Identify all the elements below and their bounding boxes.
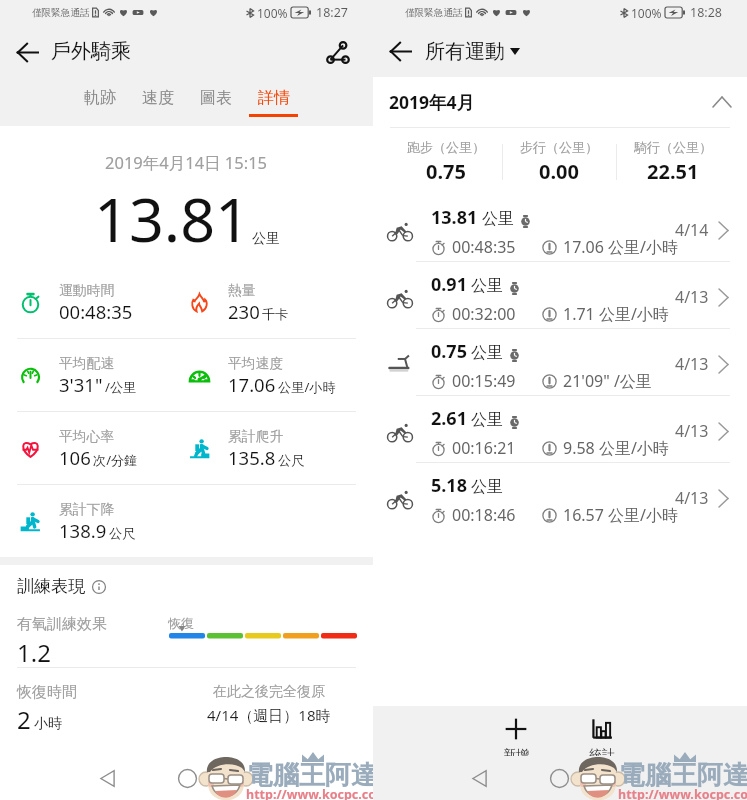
staticText: 1.71 公里/小時 — [563, 303, 669, 325]
staticText: 16.57 公里/小時 — [563, 504, 679, 526]
staticText: 2 — [17, 703, 31, 736]
staticText: 0.00 — [539, 158, 579, 185]
staticText: 公里 — [471, 343, 503, 363]
staticText: 軌跡 — [84, 88, 116, 108]
staticText: 1.2 — [17, 636, 51, 669]
staticText: 速度 — [142, 88, 174, 108]
button[interactable]: Back — [89, 760, 125, 796]
staticText: 230 — [228, 299, 260, 324]
button[interactable]: Back — [378, 29, 422, 73]
staticText: http://www.kocpc.com.tw — [246, 786, 373, 800]
staticText: 13.81 — [431, 205, 478, 230]
staticText: 在此之後完全復原 — [213, 683, 325, 701]
staticText: 22.51 — [647, 158, 699, 185]
staticText: 公里 — [471, 477, 503, 497]
staticText: 3'31" — [59, 372, 103, 397]
button[interactable]: 0.91 — [373, 262, 747, 328]
staticText: 4/14 — [675, 219, 709, 241]
button[interactable]: 統計 — [559, 712, 645, 762]
staticText: 公里 — [471, 410, 503, 430]
staticText: 恢復 — [168, 615, 194, 631]
button[interactable]: Share — [316, 30, 360, 74]
staticText: 累計爬升 — [228, 428, 284, 445]
staticText: 平均配速 — [59, 355, 115, 372]
staticText: 騎行（公里） — [634, 139, 712, 155]
staticText: 4/13 — [675, 420, 709, 442]
button[interactable]: Back — [461, 760, 497, 796]
staticText: 00:16:21 — [452, 437, 516, 459]
other: Collapse — [713, 97, 731, 107]
staticText: 小時 — [34, 715, 62, 733]
staticText: 公里/小時 — [278, 378, 336, 396]
staticText: 所有運動 — [425, 39, 505, 64]
staticText: http://www.kocpc.com.tw — [618, 786, 747, 800]
staticText: 2019年4月 — [389, 90, 475, 114]
staticText: 僅限緊急通話 — [32, 7, 90, 19]
staticText: 平均速度 — [228, 355, 284, 372]
staticText: 4/13 — [675, 286, 709, 308]
staticText: 4/13 — [675, 487, 709, 509]
staticText: 熱量 — [228, 282, 256, 299]
staticText: 戶外騎乘 — [51, 39, 131, 64]
button[interactable]: 新增 — [473, 712, 559, 762]
staticText: 5.18 — [431, 473, 467, 498]
staticText: 2019年4月14日 15:15 — [105, 151, 268, 174]
staticText: 公尺 — [278, 452, 305, 469]
staticText: 135.8 — [228, 445, 276, 470]
staticText: 公里 — [471, 276, 503, 296]
button[interactable]: Back — [5, 30, 49, 74]
staticText: 僅限緊急通話 — [405, 7, 463, 19]
staticText: 18:28 — [690, 4, 722, 21]
staticText: 跑步（公里） — [407, 139, 485, 155]
button[interactable]: 速度 — [128, 78, 186, 126]
staticText: 13.81 — [94, 177, 250, 260]
staticText: 新增 — [503, 746, 529, 762]
staticText: 17.06 — [228, 372, 276, 397]
staticText: 00:48:35 — [452, 236, 516, 258]
staticText: 千卡 — [262, 306, 289, 323]
staticText: 詳情 — [258, 88, 290, 108]
staticText: /公里 — [105, 378, 137, 396]
staticText: 運動時間 — [59, 282, 115, 299]
staticText: 公尺 — [109, 525, 136, 542]
staticText: 電腦王阿達 — [619, 759, 747, 792]
staticText: 公里 — [482, 209, 514, 229]
staticText: 106 — [59, 445, 91, 470]
staticText: 9.58 公里/小時 — [563, 437, 669, 459]
button[interactable]: 2019年4月 — [373, 77, 747, 127]
button[interactable]: 圖表 — [186, 78, 244, 126]
staticText: 次/分鐘 — [93, 451, 138, 469]
staticText: 100% — [631, 5, 662, 21]
button[interactable]: 2.61 — [373, 396, 747, 462]
staticText: 100% — [257, 5, 288, 21]
staticText: 0.91 — [431, 272, 467, 297]
staticText: 0.75 — [431, 339, 467, 364]
button[interactable]: 13.81 — [373, 195, 747, 261]
staticText: 平均心率 — [59, 428, 115, 445]
button[interactable]: 軌跡 — [70, 78, 128, 126]
staticText: 統計 — [589, 746, 615, 762]
button[interactable]: 5.18 — [373, 463, 747, 529]
button[interactable]: 0.75 — [373, 329, 747, 395]
button[interactable]: 所有運動 — [425, 39, 520, 64]
button[interactable]: Home — [169, 760, 205, 796]
staticText: 17.06 公里/小時 — [563, 236, 679, 258]
staticText: 4/13 — [675, 353, 709, 375]
staticText: 公里 — [252, 230, 280, 248]
button[interactable]: Home — [541, 760, 577, 796]
staticText: 138.9 — [59, 518, 107, 543]
staticText: 訓練表現 — [17, 576, 85, 597]
staticText: 電腦王阿達 — [247, 759, 373, 792]
staticText: 步行（公里） — [520, 139, 598, 155]
staticText: 18:27 — [316, 4, 348, 21]
button[interactable]: 詳情 — [244, 78, 302, 126]
staticText: 00:18:46 — [452, 504, 516, 526]
staticText: 圖表 — [200, 88, 232, 108]
staticText: 00:32:00 — [452, 303, 516, 325]
staticText: 4/14（週日）18時 — [207, 705, 331, 725]
staticText: 00:15:49 — [452, 370, 516, 392]
staticText: 恢復時間 — [17, 683, 77, 702]
staticText: 有氧訓練效果 — [17, 615, 107, 634]
staticText: 2.61 — [431, 406, 467, 431]
staticText: 0.75 — [426, 158, 466, 185]
